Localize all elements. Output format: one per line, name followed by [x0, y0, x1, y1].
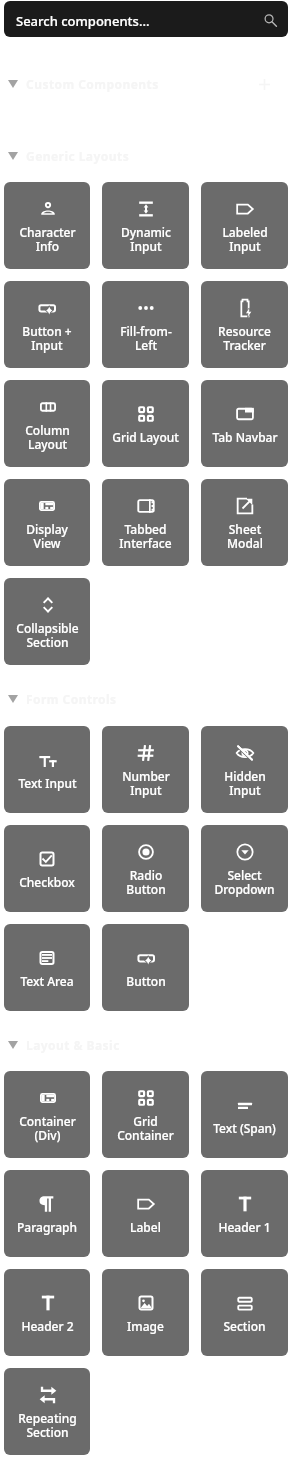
button[interactable]: Dynamic Input [102, 182, 189, 269]
staticText: Text Input [18, 775, 77, 791]
staticText: Container (Div) [19, 1113, 76, 1144]
staticText: Layout & Basic [26, 1037, 120, 1053]
staticText: Resource Tracker [218, 323, 271, 354]
staticText: Select Dropdown [214, 867, 275, 898]
button[interactable]: Form Controls [0, 682, 293, 716]
staticText: Radio Button [126, 867, 166, 898]
button[interactable]: Text Area [4, 924, 90, 1011]
button[interactable]: Section [201, 1269, 288, 1356]
staticText: Dynamic Input [121, 224, 171, 255]
button[interactable]: Radio Button [102, 825, 189, 912]
button[interactable]: Header 1 [201, 1170, 288, 1257]
button[interactable]: Button + Input [4, 281, 90, 368]
button[interactable]: Number Input [102, 726, 189, 813]
staticText: Text (Span) [213, 1120, 276, 1136]
staticText: Hidden Input [224, 768, 266, 799]
button[interactable]: Collapsible Section [4, 578, 90, 665]
button[interactable]: Tabbed Interface [102, 479, 189, 566]
button[interactable]: Image [102, 1269, 189, 1356]
staticText: Paragraph [17, 1219, 77, 1235]
button[interactable]: Layout & Basic [0, 1028, 293, 1062]
staticText: Repeating Section [18, 1410, 77, 1441]
staticText: Fill-from- Left [120, 323, 172, 354]
button[interactable]: Select Dropdown [201, 825, 288, 912]
staticText: Grid Container [117, 1113, 174, 1144]
button[interactable]: Display View [4, 479, 90, 566]
button[interactable]: Text Input [4, 726, 90, 813]
staticText: Section [223, 1318, 266, 1334]
staticText: Custom Components [26, 76, 159, 92]
staticText: Label [130, 1219, 161, 1235]
staticText: Checkbox [19, 874, 75, 890]
staticText: Tab Navbar [212, 429, 278, 445]
staticText: Character Info [19, 224, 76, 255]
staticText: Text Area [20, 973, 74, 989]
staticText: Header 2 [21, 1318, 74, 1334]
staticText: Button [126, 973, 166, 989]
button[interactable]: Tab Navbar [201, 380, 288, 467]
other: Search [263, 13, 278, 28]
button[interactable]: Search components... [4, 1, 288, 37]
staticText: Form Controls [26, 691, 117, 707]
button[interactable]: Labeled Input [201, 182, 288, 269]
button[interactable]: Repeating Section [4, 1368, 90, 1455]
staticText: Tabbed Interface [119, 521, 172, 552]
button[interactable]: Paragraph [4, 1170, 90, 1257]
staticText: Generic Layouts [26, 148, 130, 164]
button[interactable]: Grid Container [102, 1071, 189, 1158]
staticText: Display View [26, 521, 68, 552]
button[interactable]: Column Layout [4, 380, 90, 467]
button[interactable]: Resource Tracker [201, 281, 288, 368]
button[interactable]: Button [102, 924, 189, 1011]
staticText: Header 1 [218, 1219, 271, 1235]
button[interactable]: Header 2 [4, 1269, 90, 1356]
button[interactable]: Checkbox [4, 825, 90, 912]
button[interactable]: Container (Div) [4, 1071, 90, 1158]
button[interactable]: Grid Layout [102, 380, 189, 467]
staticText: Number Input [122, 768, 170, 799]
staticText: Button + Input [22, 323, 72, 354]
button[interactable]: Character Info [4, 182, 90, 269]
staticText: Search components... [16, 12, 150, 30]
staticText: Column Layout [25, 422, 70, 453]
button[interactable]: Label [102, 1170, 189, 1257]
button[interactable]: Custom Components [0, 67, 293, 101]
staticText: Collapsible Section [16, 620, 79, 651]
button[interactable]: Fill-from- Left [102, 281, 189, 368]
button[interactable]: Text (Span) [201, 1071, 288, 1158]
staticText: Image [127, 1318, 164, 1334]
staticText: Labeled Input [222, 224, 268, 255]
button[interactable]: Sheet Modal [201, 479, 288, 566]
staticText: Grid Layout [112, 429, 179, 445]
button[interactable]: Hidden Input [201, 726, 288, 813]
staticText: Sheet Modal [227, 521, 263, 552]
button[interactable]: Generic Layouts [0, 139, 293, 173]
